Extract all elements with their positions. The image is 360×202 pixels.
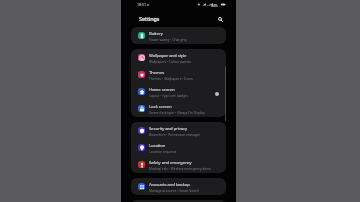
staticText: Location requests bbox=[149, 149, 177, 154]
staticText: Security and privacy bbox=[149, 125, 187, 131]
staticText: Home screen bbox=[149, 86, 175, 92]
button[interactable]: Wallpaper and style bbox=[131, 49, 226, 66]
staticText: Power saving • Charging bbox=[149, 37, 187, 42]
staticText: Screen lock type • Always On Display bbox=[149, 110, 205, 115]
button[interactable]: Accounts and backup bbox=[131, 178, 226, 195]
button[interactable]: Battery bbox=[131, 27, 226, 44]
staticText: Settings bbox=[139, 15, 160, 22]
button[interactable]: Security and privacy bbox=[131, 122, 226, 139]
staticText: Medical info • Wireless emergency alerts bbox=[149, 166, 211, 171]
staticText: Layout • App icon badges bbox=[149, 93, 189, 98]
button[interactable]: Lock screen bbox=[131, 100, 226, 117]
button[interactable]: Search bbox=[216, 15, 224, 23]
staticText: Battery bbox=[149, 30, 163, 36]
staticText: Safety and emergency bbox=[149, 159, 192, 165]
button[interactable]: Location bbox=[131, 139, 226, 156]
staticText: Accounts and backup bbox=[149, 181, 190, 187]
staticText: Wallpapers • Colour palette bbox=[149, 59, 191, 64]
staticText: Manage accounts • Smart Switch bbox=[149, 188, 200, 193]
button[interactable]: Google bbox=[131, 200, 226, 202]
staticText: Themes • Wallpapers • Icons bbox=[149, 76, 193, 81]
staticText: 54% bbox=[211, 3, 218, 7]
button[interactable]: Themes bbox=[131, 66, 226, 83]
staticText: Biometrics • Permission manager bbox=[149, 132, 201, 137]
staticText: Wallpaper and style bbox=[149, 52, 187, 58]
button[interactable]: Home screen bbox=[131, 83, 226, 100]
staticText: Themes bbox=[149, 69, 165, 75]
button[interactable]: Safety and emergency bbox=[131, 156, 226, 173]
staticText: Lock screen bbox=[149, 103, 172, 109]
staticText: 18:51 bbox=[137, 2, 146, 7]
staticText: Location bbox=[149, 142, 166, 148]
